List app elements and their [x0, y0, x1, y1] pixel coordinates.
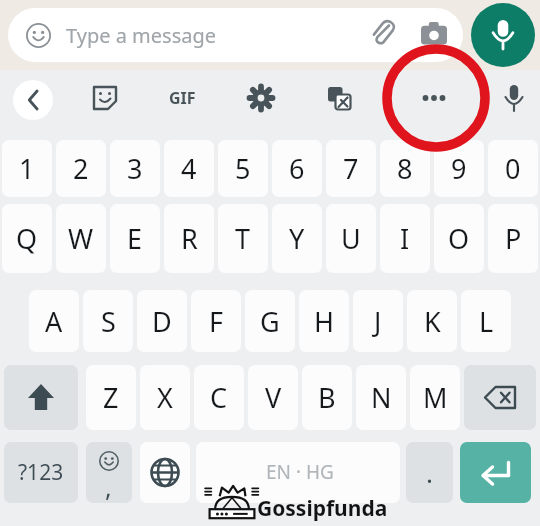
staticText: P — [505, 220, 522, 257]
staticText: EN · HG — [266, 459, 334, 485]
staticText: W — [68, 220, 94, 257]
staticText: X — [157, 379, 173, 416]
staticText: 6 — [289, 150, 305, 187]
button[interactable]: Enter — [460, 442, 531, 503]
button[interactable]: N — [356, 365, 406, 430]
staticText: 5 — [235, 150, 251, 187]
button[interactable]: Type a message — [8, 8, 463, 62]
button[interactable]: Backspace — [464, 365, 536, 430]
staticText: Q — [16, 220, 38, 257]
staticText: C — [210, 379, 228, 416]
button[interactable]: T — [218, 204, 268, 273]
button[interactable]: 2 — [56, 140, 106, 197]
staticText: 3 — [127, 150, 143, 187]
button[interactable]: G — [245, 290, 295, 352]
button[interactable]: GIF — [160, 78, 204, 118]
button[interactable]: I — [380, 204, 430, 273]
staticText: M — [423, 379, 448, 416]
button[interactable]: 3 — [110, 140, 160, 197]
button[interactable]: P — [488, 204, 538, 273]
staticText: , — [105, 470, 112, 503]
button[interactable]: Symbols — [4, 442, 78, 503]
button[interactable]: S — [83, 290, 133, 352]
staticText: U — [341, 220, 361, 257]
staticText: 4 — [181, 150, 197, 187]
button[interactable]: Y — [272, 204, 322, 273]
button[interactable]: Shift — [4, 365, 78, 430]
button[interactable]: 7 — [326, 140, 376, 197]
button[interactable]: Stickers — [83, 78, 127, 118]
button[interactable]: Change language — [140, 442, 190, 503]
button[interactable]: More options — [412, 78, 456, 118]
button[interactable]: 6 — [272, 140, 322, 197]
button[interactable]: 0 — [488, 140, 538, 197]
button[interactable]: Camera — [413, 13, 455, 55]
button[interactable]: U — [326, 204, 376, 273]
staticText: F — [209, 303, 224, 340]
button[interactable]: Translate — [317, 78, 361, 118]
staticText: K — [424, 303, 441, 340]
staticText: N — [371, 379, 392, 416]
staticText: Gossipfunda — [257, 494, 388, 523]
button[interactable]: Record voice message — [471, 3, 535, 67]
button[interactable]: V — [248, 365, 298, 430]
button[interactable]: Space — [196, 442, 400, 503]
staticText: 9 — [451, 150, 467, 187]
button[interactable]: Attach — [361, 12, 403, 54]
staticText: Type a message — [66, 22, 217, 49]
button[interactable]: W — [56, 204, 106, 273]
button[interactable]: Z — [86, 365, 136, 430]
staticText: 1 — [19, 150, 35, 187]
button[interactable]: . — [406, 442, 453, 503]
button[interactable]: 9 — [434, 140, 484, 197]
staticText: T — [235, 220, 251, 257]
button[interactable]: Back — [13, 80, 53, 120]
button[interactable]: O — [434, 204, 484, 273]
button[interactable]: M — [410, 365, 460, 430]
staticText: R — [181, 220, 198, 257]
button[interactable]: Voice typing — [492, 78, 536, 118]
button[interactable]: E — [110, 204, 160, 273]
button[interactable]: R — [164, 204, 214, 273]
button[interactable]: J — [353, 290, 403, 352]
staticText: E — [127, 220, 143, 257]
button[interactable]: Settings — [239, 78, 283, 118]
staticText: H — [314, 303, 335, 340]
button[interactable]: C — [194, 365, 244, 430]
staticText: ?123 — [18, 458, 64, 487]
staticText: S — [101, 303, 116, 340]
staticText: A — [45, 303, 63, 340]
button[interactable]: D — [137, 290, 187, 352]
button[interactable]: 1 — [2, 140, 52, 197]
button[interactable]: A — [29, 290, 79, 352]
staticText: I — [400, 220, 410, 257]
button[interactable]: 4 — [164, 140, 214, 197]
button[interactable]: X — [140, 365, 190, 430]
staticText: O — [448, 220, 470, 257]
staticText: 7 — [343, 150, 359, 187]
staticText: GIF — [169, 87, 196, 109]
staticText: G — [260, 303, 280, 340]
staticText: 2 — [73, 150, 89, 187]
button[interactable]: Q — [2, 204, 52, 273]
staticText: Z — [103, 379, 119, 416]
staticText: J — [374, 303, 382, 340]
button[interactable]: H — [299, 290, 349, 352]
button[interactable]: Emoji — [86, 442, 132, 503]
staticText: D — [152, 303, 172, 340]
button[interactable]: K — [407, 290, 457, 352]
staticText: 0 — [505, 150, 521, 187]
staticText: V — [265, 379, 282, 416]
staticText: . — [426, 455, 433, 490]
button[interactable]: F — [191, 290, 241, 352]
button[interactable]: B — [302, 365, 352, 430]
staticText: B — [318, 379, 336, 416]
staticText: Y — [289, 220, 305, 257]
button[interactable]: 8 — [380, 140, 430, 197]
staticText: L — [479, 303, 494, 340]
button[interactable]: 5 — [218, 140, 268, 197]
button[interactable]: L — [461, 290, 511, 352]
staticText: 8 — [397, 150, 413, 187]
